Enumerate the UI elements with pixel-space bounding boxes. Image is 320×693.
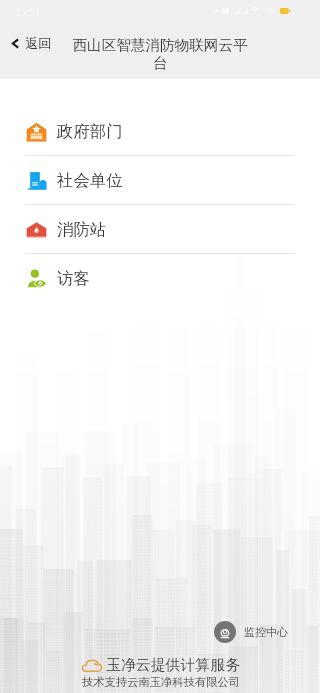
staticText: 返回 xyxy=(25,35,52,52)
button[interactable]: 访客 xyxy=(0,254,320,302)
staticText: 技术支持云南玉净科技有限公司 xyxy=(82,675,241,689)
staticText: 西山区智慧消防物联网云平台 xyxy=(67,36,253,73)
staticText: 消防站 xyxy=(57,219,107,240)
button[interactable]: 监控中心 xyxy=(214,621,288,643)
button[interactable]: 消防站 xyxy=(0,205,320,253)
other: 监控中心 xyxy=(214,621,236,643)
staticText: 社会单位 xyxy=(57,170,123,191)
staticText: 玉净云提供计算服务 xyxy=(106,656,241,675)
button[interactable]: 政府部门 xyxy=(0,107,320,155)
staticText: 访客 xyxy=(57,268,90,289)
button[interactable]: 社会单位 xyxy=(0,156,320,204)
button[interactable]: 返回 xyxy=(7,32,55,55)
staticText: 监控中心 xyxy=(244,625,288,639)
staticText: 政府部门 xyxy=(57,121,123,142)
